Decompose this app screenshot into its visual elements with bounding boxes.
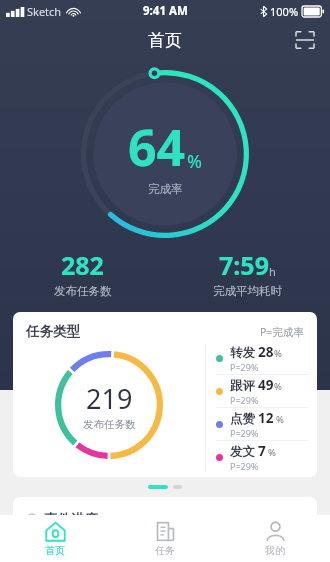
staticText: 7:59 [219,248,269,282]
button[interactable]: 点赞 [216,409,309,439]
staticText: Sketch [27,4,62,19]
staticText: 49 [258,376,274,394]
staticText: 首页 [148,30,182,51]
staticText: 9:41 AM [143,3,188,19]
button[interactable]: 我的 [220,515,330,562]
button[interactable]: Scan [290,25,320,55]
staticText: 64 [128,113,186,181]
staticText: 28 [258,343,274,361]
staticText: P=29% [230,427,259,439]
staticText: 282 [61,248,104,282]
staticText: 7 [258,442,266,460]
staticText: P=完成率 [260,325,304,339]
staticText: 任务 [155,544,175,557]
button[interactable]: 跟评 [216,376,309,406]
staticText: 发布任务数 [83,418,136,431]
button[interactable]: 任务类型 [13,312,317,477]
staticText: 发文 [230,444,255,460]
button[interactable]: 事件进度 [13,497,317,562]
staticText: 219 [86,380,133,417]
staticText: 发布任务数 [54,284,112,298]
staticText: % [268,446,276,459]
staticText: 完成平均耗时 [213,284,282,298]
staticText: P=29% [230,361,259,373]
staticText: 任务类型 [26,323,80,340]
staticText: 点赞 [230,411,255,427]
staticText: % [187,149,202,174]
staticText: h [269,264,276,279]
staticText: % [274,347,282,360]
button[interactable]: 转发 [216,343,309,373]
staticText: 首页 [45,544,65,557]
staticText: P=29% [230,460,259,472]
staticText: 完成率 [148,182,183,196]
staticText: 跟评 [230,378,255,394]
staticText: 12 [258,409,274,427]
button[interactable]: 首页 [0,515,110,562]
staticText: 事件进度 [44,511,98,528]
staticText: 转发 [230,345,255,361]
staticText: % [274,380,282,393]
button[interactable]: 任务 [110,515,220,562]
button[interactable]: 发文 [216,442,309,472]
staticText: % [276,413,284,426]
staticText: P=29% [230,394,259,406]
staticText: 我的 [265,544,285,557]
staticText: 100% [270,4,299,19]
